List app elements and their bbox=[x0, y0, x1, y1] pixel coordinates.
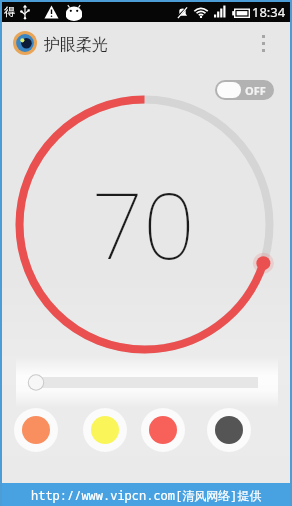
button[interactable]: More options bbox=[250, 30, 276, 56]
staticText: http://www.vipcn.com[清风网络]提供 bbox=[31, 487, 262, 503]
button[interactable]: Colour swatch bbox=[141, 408, 185, 452]
staticText: OFF bbox=[245, 83, 266, 98]
button[interactable]: Toggle night light bbox=[215, 80, 274, 100]
staticText: 护眼柔光 bbox=[44, 35, 108, 55]
button[interactable]: Colour swatch bbox=[83, 408, 127, 452]
staticText: 18:34 bbox=[252, 3, 286, 21]
button[interactable]: Colour swatch bbox=[14, 408, 58, 452]
staticText: 得 bbox=[4, 5, 15, 19]
staticText: 70 bbox=[91, 162, 195, 286]
button[interactable]: Colour swatch bbox=[207, 408, 251, 452]
